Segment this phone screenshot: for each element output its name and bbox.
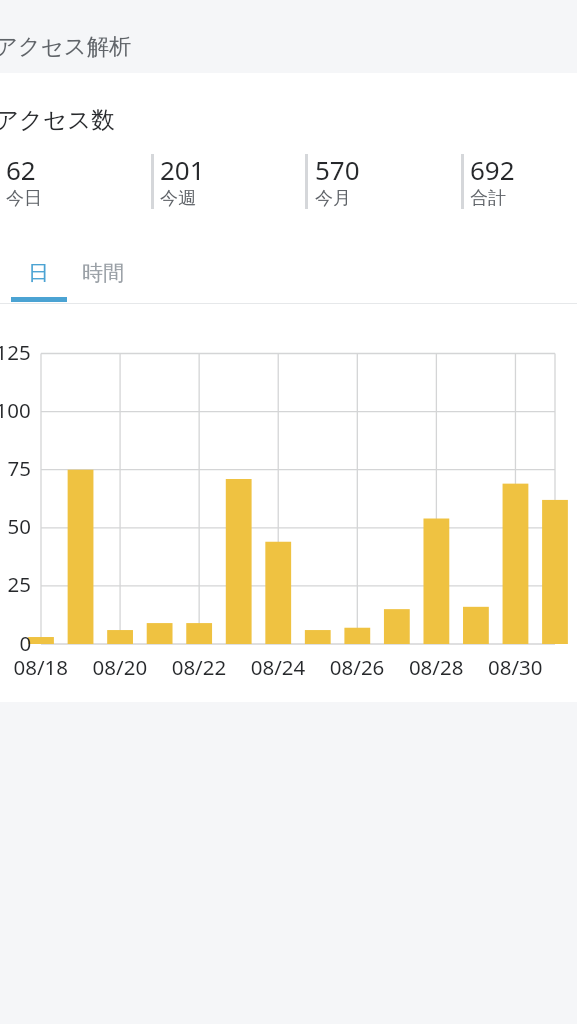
staticText: 今週 xyxy=(160,187,196,210)
staticText: アクセス解析 xyxy=(0,32,132,60)
button[interactable]: 570 xyxy=(315,152,360,210)
button[interactable]: 時間 xyxy=(72,249,134,297)
button[interactable]: 62 xyxy=(6,152,42,210)
button[interactable]: 日 xyxy=(5,249,71,297)
staticText: アクセス数 xyxy=(0,105,115,135)
staticText: 日 xyxy=(28,260,49,286)
staticText: 今月 xyxy=(315,187,351,210)
staticText: 今日 xyxy=(6,187,42,210)
button[interactable]: 692 xyxy=(470,152,515,210)
button[interactable]: アクセス解析 xyxy=(0,0,577,73)
staticText: 合計 xyxy=(470,187,506,210)
button[interactable]: 201 xyxy=(160,152,205,210)
staticText: 201 xyxy=(160,152,205,187)
staticText: 時間 xyxy=(82,260,124,286)
staticText: 570 xyxy=(315,152,360,187)
staticText: 692 xyxy=(470,152,515,187)
staticText: 62 xyxy=(6,152,36,187)
